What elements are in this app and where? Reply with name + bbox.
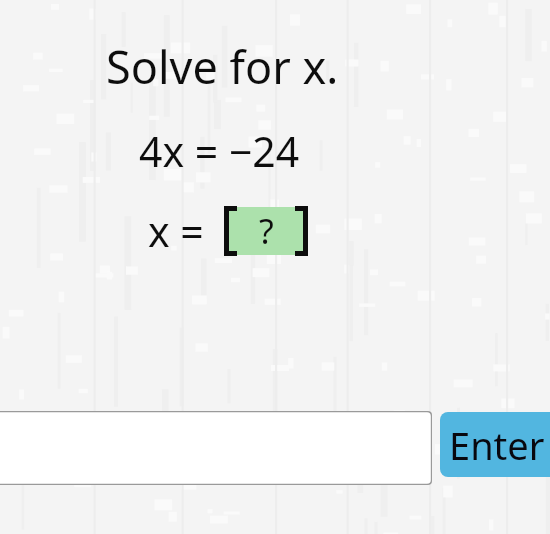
button[interactable]: Answer input field [0,411,432,485]
staticText: 4x = −24 [139,123,300,179]
staticText: Solve for x. [106,36,339,97]
button[interactable]: Answer blank [224,206,308,256]
staticText: Enter [449,419,545,471]
staticText: ? [259,208,274,254]
button[interactable]: Enter [440,412,550,477]
staticText: x = [148,203,204,259]
